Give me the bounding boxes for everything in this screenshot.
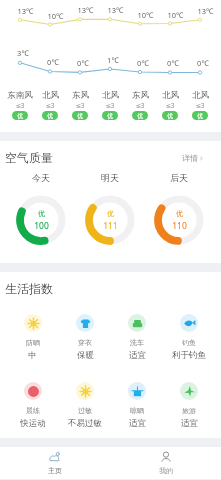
staticText: 北风: [102, 90, 119, 101]
staticText: 优: [137, 112, 143, 120]
staticText: 空气质量: [5, 150, 53, 165]
button[interactable]: 过敏: [59, 382, 111, 429]
staticText: 我的: [159, 466, 173, 475]
staticText: 优: [107, 112, 113, 120]
staticText: 0℃: [47, 57, 59, 67]
staticText: 适宜: [129, 350, 146, 361]
staticText: 13℃: [197, 6, 214, 16]
staticText: 100: [34, 220, 49, 232]
button[interactable]: 穿衣: [59, 314, 111, 361]
button[interactable]: 主页: [0, 447, 110, 479]
staticText: 111: [103, 220, 118, 232]
staticText: 适宜: [129, 418, 146, 429]
staticText: 保暖: [77, 350, 94, 361]
staticText: 10℃: [137, 10, 154, 20]
staticText: ≤3: [135, 101, 145, 110]
staticText: 北风: [42, 90, 59, 101]
staticText: 优: [107, 209, 114, 218]
staticText: 3℃: [17, 48, 29, 58]
staticText: 生活指数: [5, 281, 53, 296]
staticText: 0℃: [77, 58, 89, 68]
staticText: ≤3: [105, 101, 115, 110]
staticText: 13℃: [17, 6, 34, 16]
staticText: 13℃: [77, 5, 94, 15]
button[interactable]: 旅游: [163, 382, 215, 429]
staticText: 13℃: [107, 5, 124, 15]
staticText: 晾晒: [130, 406, 144, 415]
button[interactable]: 我的: [110, 447, 221, 479]
staticText: 优: [17, 112, 23, 120]
staticText: 优: [176, 209, 183, 218]
staticText: 东南风: [7, 90, 33, 101]
staticText: 北风: [192, 90, 209, 101]
button[interactable]: 晨练: [6, 382, 59, 429]
staticText: ≤3: [195, 101, 205, 110]
staticText: 优: [77, 112, 83, 120]
staticText: 今天: [32, 172, 50, 183]
staticText: 钓鱼: [182, 338, 196, 347]
staticText: 10℃: [47, 11, 64, 21]
staticText: 洗车: [130, 338, 144, 347]
staticText: 东风: [72, 90, 89, 101]
staticText: 1℃: [107, 55, 119, 65]
button[interactable]: 防晒: [6, 314, 59, 361]
button[interactable]: 晾晒: [111, 382, 163, 429]
staticText: ≤3: [15, 101, 25, 110]
staticText: 10℃: [167, 10, 184, 20]
staticText: 中: [28, 350, 37, 361]
staticText: ≤3: [75, 101, 85, 110]
staticText: 防晒: [26, 338, 40, 347]
staticText: 快运动: [20, 418, 46, 429]
staticText: 优: [47, 112, 53, 120]
staticText: 0℃: [197, 58, 209, 68]
staticText: 0℃: [167, 58, 179, 68]
staticText: 北风: [162, 90, 179, 101]
staticText: 优: [38, 209, 45, 218]
staticText: 0℃: [137, 58, 149, 68]
staticText: ≤3: [45, 101, 55, 110]
staticText: ≤3: [165, 101, 175, 110]
staticText: 过敏: [78, 406, 92, 415]
staticText: 明天: [101, 172, 119, 183]
button[interactable]: 明天: [85, 172, 135, 245]
staticText: 不易过敏: [68, 418, 102, 429]
button[interactable]: 后天: [154, 172, 204, 245]
staticText: 利于钓鱼: [172, 350, 206, 361]
staticText: 优: [197, 112, 203, 120]
staticText: 旅游: [182, 406, 196, 415]
staticText: 详情: [182, 153, 198, 163]
button[interactable]: 今天: [16, 172, 66, 245]
staticText: 晨练: [26, 406, 40, 415]
staticText: 适宜: [181, 418, 198, 429]
staticText: 东风: [132, 90, 149, 101]
staticText: 主页: [48, 466, 62, 475]
staticText: 优: [167, 112, 173, 120]
button[interactable]: 详情: [182, 153, 204, 163]
button[interactable]: 洗车: [111, 314, 163, 361]
staticText: 110: [172, 220, 187, 232]
staticText: 后天: [170, 172, 188, 183]
button[interactable]: 钓鱼: [163, 314, 215, 361]
staticText: 穿衣: [78, 338, 92, 347]
